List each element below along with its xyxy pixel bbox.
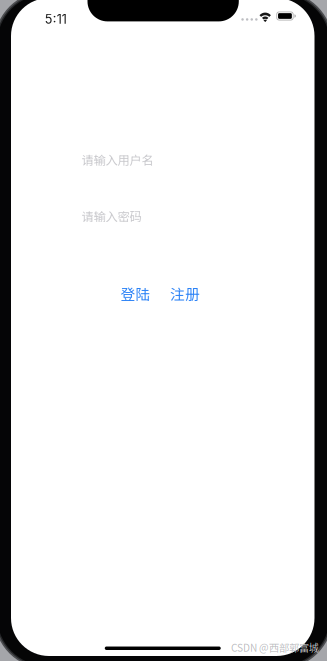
staticText: 请输入密码	[81, 207, 141, 225]
staticText: 5:11	[45, 12, 67, 27]
button[interactable]: 登陆	[120, 283, 150, 304]
staticText: 登陆	[120, 283, 150, 304]
staticText: CSDN @西部郭富城	[231, 640, 319, 655]
staticText: 注册	[170, 283, 200, 304]
button[interactable]: 注册	[170, 283, 200, 304]
staticText: 请输入用户名	[81, 150, 153, 168]
